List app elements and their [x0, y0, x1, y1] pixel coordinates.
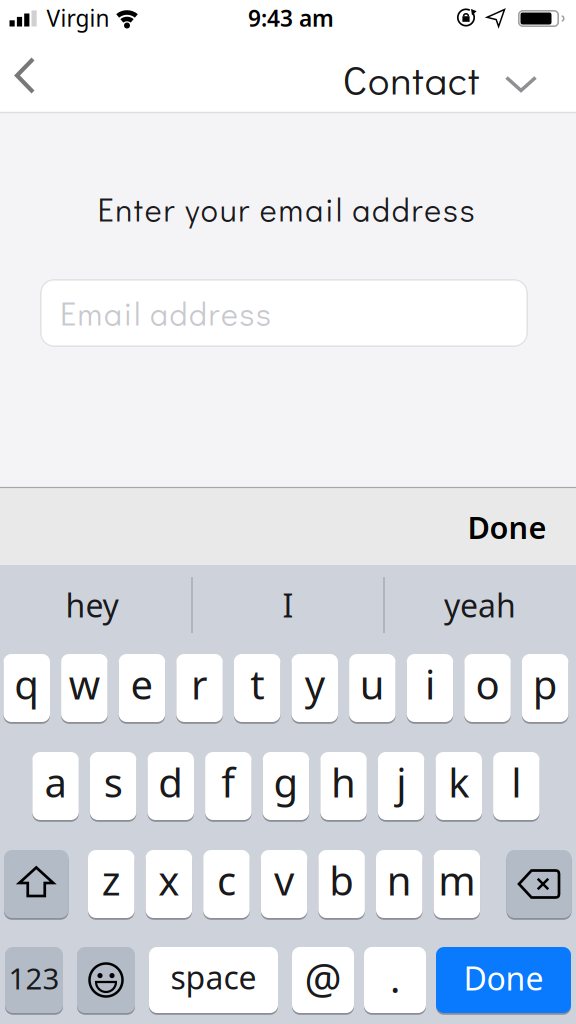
staticText: n — [387, 853, 412, 906]
staticText: t — [250, 657, 264, 710]
button[interactable]: o — [464, 652, 511, 724]
staticText: z — [102, 853, 121, 906]
staticText: h — [331, 755, 356, 808]
button[interactable]: a — [32, 750, 79, 822]
staticText: Enter your email address — [97, 188, 475, 230]
staticText: yeah — [444, 584, 516, 626]
button[interactable]: i — [407, 652, 453, 724]
staticText: Virgin — [46, 3, 109, 33]
button[interactable]: Shift — [4, 848, 68, 920]
button[interactable]: 123 — [5, 945, 63, 1015]
button[interactable]: Done — [451, 489, 562, 565]
staticText: @ — [304, 951, 341, 1005]
button[interactable]: g — [263, 750, 309, 822]
button[interactable]: b — [318, 848, 365, 920]
staticText: l — [511, 755, 521, 808]
staticText: I — [282, 584, 293, 626]
staticText: a — [44, 755, 66, 808]
button[interactable]: v — [261, 848, 307, 920]
staticText: Contact — [343, 53, 479, 105]
button[interactable]: Back — [14, 56, 52, 95]
button[interactable]: u — [349, 652, 396, 724]
button[interactable]: y — [291, 652, 338, 724]
staticText: s — [104, 755, 123, 808]
button[interactable]: hey — [2, 570, 182, 640]
staticText: c — [217, 853, 236, 906]
staticText: u — [360, 657, 385, 710]
staticText: 9:43 am — [248, 3, 334, 33]
staticText: hey — [65, 584, 118, 626]
button[interactable]: k — [435, 750, 482, 822]
button[interactable]: j — [378, 750, 424, 822]
button[interactable]: w — [61, 652, 108, 724]
button[interactable]: Email address — [40, 279, 528, 347]
staticText: f — [221, 755, 235, 808]
staticText: k — [448, 755, 469, 808]
staticText: m — [438, 853, 475, 906]
button[interactable]: s — [90, 750, 136, 822]
button[interactable]: z — [88, 848, 134, 920]
button[interactable]: Done — [436, 945, 571, 1015]
button[interactable]: l — [493, 750, 540, 822]
button[interactable]: Contact — [301, 51, 531, 107]
button[interactable]: . — [364, 945, 426, 1015]
button[interactable]: n — [376, 848, 422, 920]
staticText: i — [425, 657, 435, 710]
staticText: j — [396, 755, 406, 808]
staticText: r — [191, 657, 208, 710]
staticText: x — [158, 853, 179, 906]
button[interactable]: c — [203, 848, 250, 920]
staticText: Done — [467, 507, 546, 547]
staticText: Email address — [60, 292, 271, 334]
staticText: o — [476, 657, 500, 710]
staticText: g — [273, 755, 298, 808]
button[interactable]: x — [146, 848, 192, 920]
button[interactable]: d — [147, 750, 194, 822]
staticText: y — [305, 657, 325, 710]
button[interactable]: I — [198, 570, 378, 640]
staticText: p — [533, 657, 558, 710]
staticText: q — [14, 657, 39, 710]
staticText: d — [158, 755, 183, 808]
button[interactable]: r — [176, 652, 223, 724]
button[interactable]: h — [320, 750, 367, 822]
button[interactable]: Delete — [506, 848, 571, 920]
button[interactable]: q — [3, 652, 50, 724]
staticText: . — [390, 952, 400, 1004]
staticText: w — [69, 657, 100, 710]
button[interactable]: e — [119, 652, 165, 724]
button[interactable]: @ — [292, 945, 354, 1015]
staticText: 123 — [8, 958, 59, 997]
button[interactable]: f — [205, 750, 252, 822]
button[interactable]: p — [522, 652, 568, 724]
staticText: space — [170, 956, 256, 998]
button[interactable]: yeah — [390, 570, 570, 640]
staticText: v — [274, 853, 294, 906]
button[interactable]: m — [434, 848, 480, 920]
staticText: e — [130, 657, 153, 710]
button[interactable]: t — [234, 652, 280, 724]
staticText: b — [329, 853, 354, 906]
staticText: Done — [463, 957, 543, 999]
button[interactable]: space — [149, 945, 278, 1015]
button[interactable]: Emoji — [77, 945, 135, 1015]
